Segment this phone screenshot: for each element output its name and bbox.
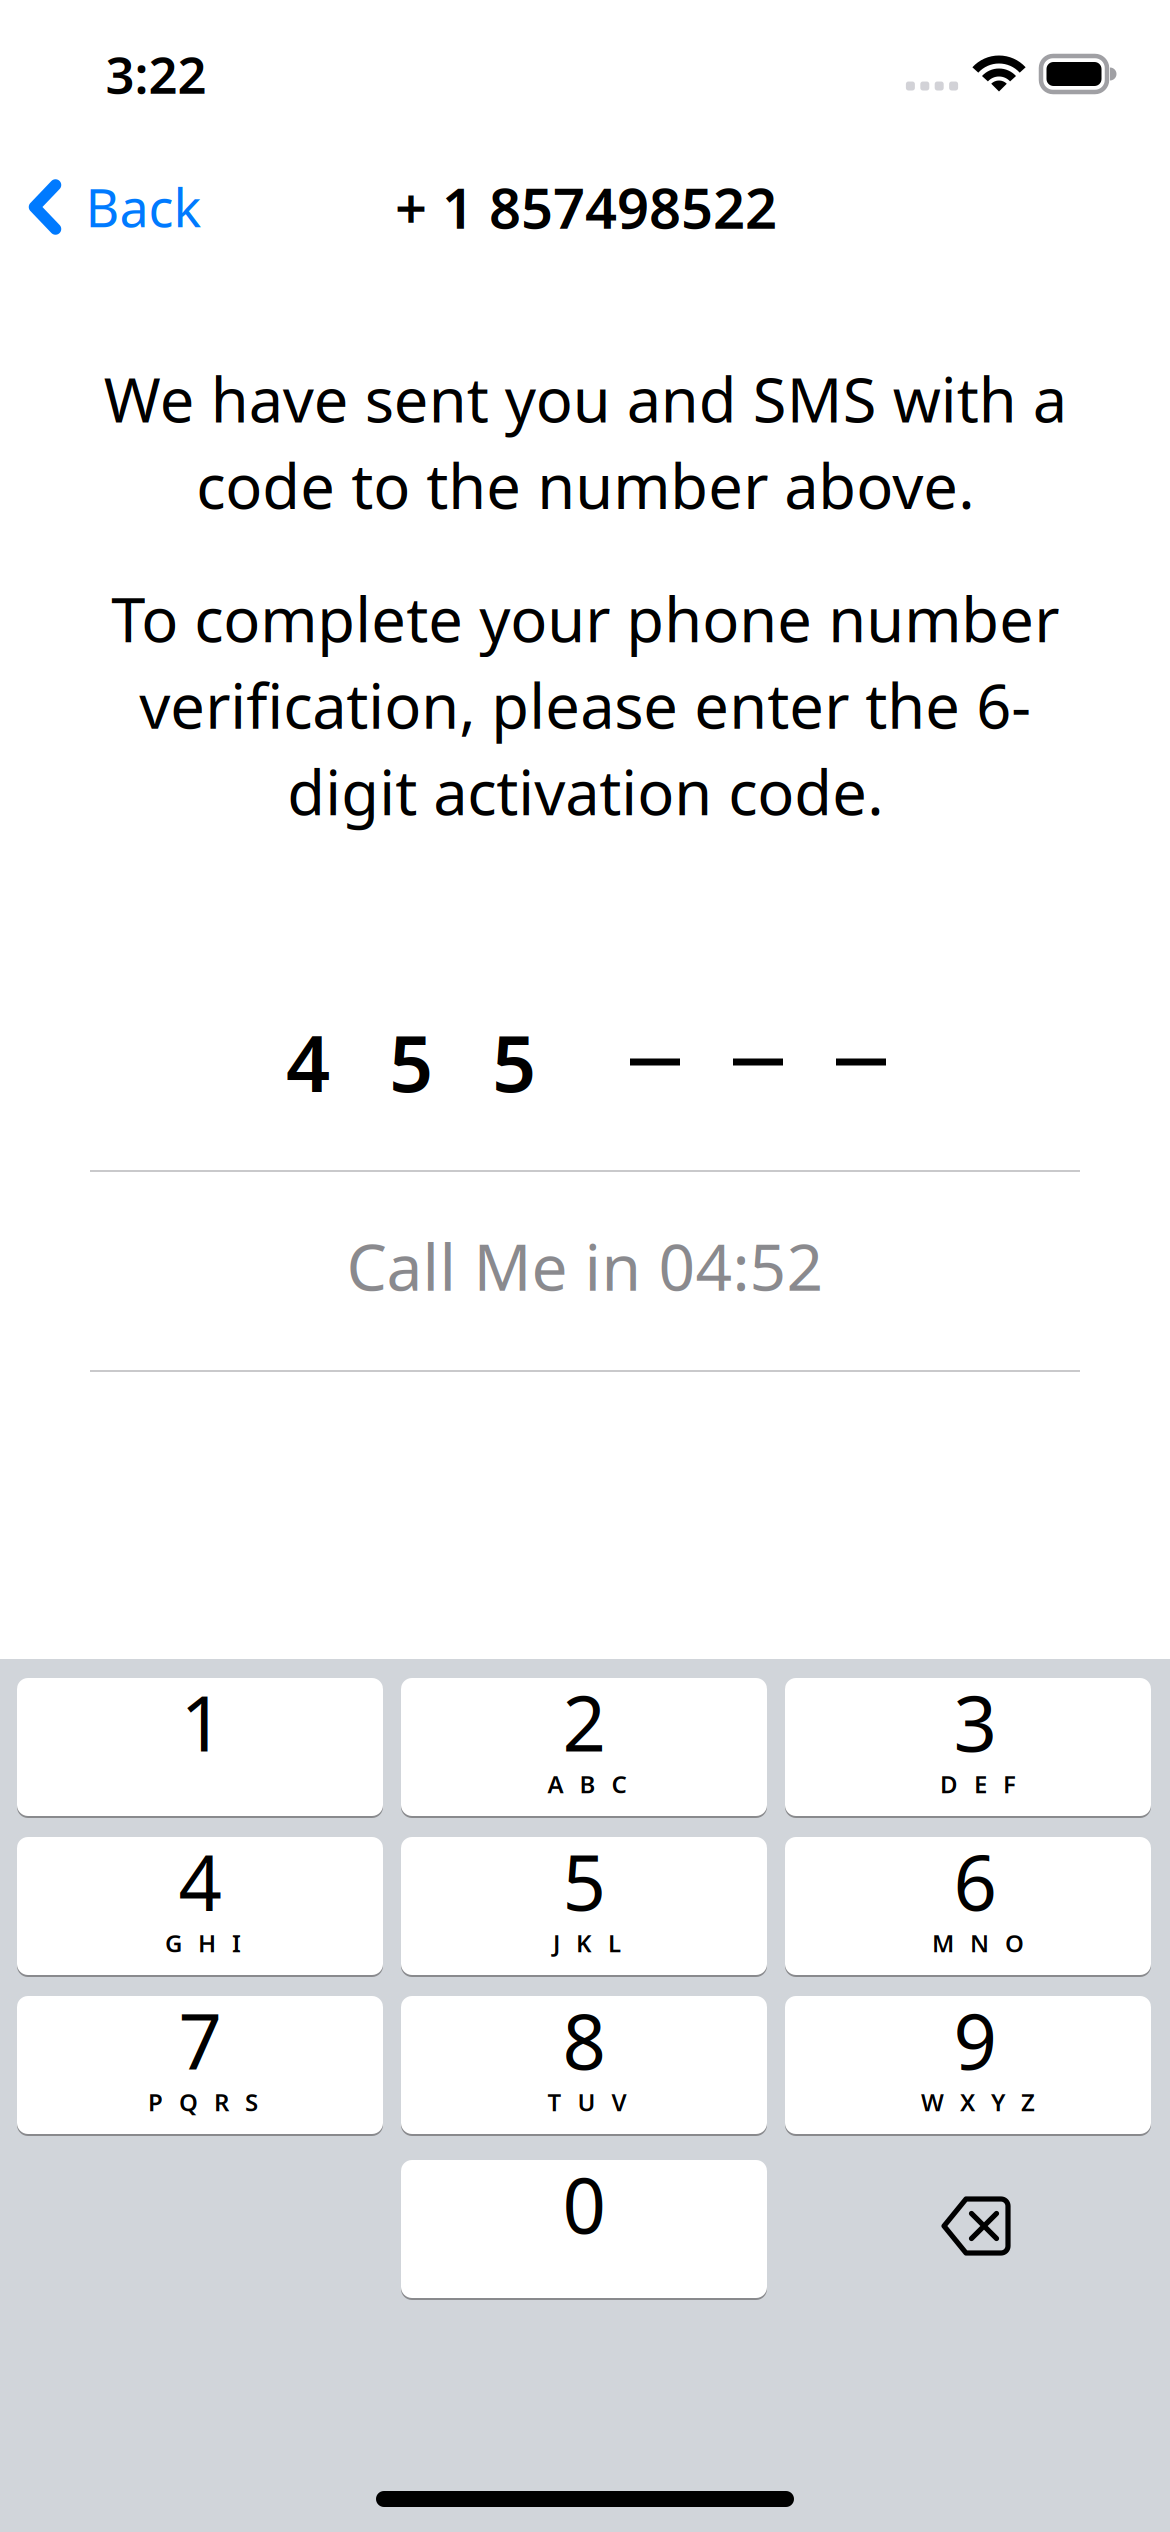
- staticText: Call Me in 04:52: [346, 1223, 823, 1308]
- staticText: 5: [562, 1830, 605, 1931]
- button[interactable]: 0: [401, 2159, 767, 2299]
- staticText: 0: [562, 2153, 605, 2254]
- staticText: MNO: [932, 1927, 1024, 1959]
- button[interactable]: Delete: [793, 2157, 1159, 2295]
- staticText: 8: [562, 1989, 605, 2090]
- staticText: To complete your phone number verificati…: [111, 578, 1059, 832]
- staticText: Back: [85, 172, 201, 242]
- staticText: PQRS: [148, 2086, 258, 2118]
- button[interactable]: Call Me in 04:52: [90, 1166, 1080, 1365]
- button[interactable]: 8: [401, 1995, 767, 2135]
- staticText: 4: [178, 1830, 221, 1931]
- staticText: TUV: [547, 2086, 626, 2118]
- staticText: 1: [180, 1671, 223, 1772]
- button[interactable]: 3: [785, 1677, 1151, 1817]
- button[interactable]: Back: [0, 150, 225, 264]
- staticText: ABC: [547, 1768, 626, 1800]
- staticText: + 1 857498522: [395, 170, 777, 244]
- staticText: JKL: [553, 1927, 621, 1959]
- staticText: 4: [286, 1011, 330, 1113]
- staticText: DEF: [940, 1768, 1016, 1800]
- staticText: 6: [953, 1830, 996, 1931]
- staticText: 9: [953, 1989, 996, 2090]
- button[interactable]: 6: [785, 1836, 1151, 1976]
- staticText: 3:22: [105, 40, 206, 108]
- button[interactable]: 5: [401, 1836, 767, 1976]
- staticText: GHI: [165, 1927, 241, 1959]
- staticText: WXYZ: [921, 2086, 1035, 2118]
- button[interactable]: 4: [17, 1836, 383, 1976]
- staticText: 5: [492, 1011, 536, 1113]
- button[interactable]: 2: [401, 1677, 767, 1817]
- staticText: 5: [389, 1011, 433, 1113]
- staticText: 2: [562, 1671, 605, 1772]
- button[interactable]: 7: [17, 1995, 383, 2135]
- staticText: 3: [953, 1671, 996, 1772]
- button[interactable]: 1: [17, 1677, 383, 1817]
- staticText: We have sent you and SMS with a code to …: [103, 358, 1066, 526]
- staticText: 7: [178, 1989, 221, 2090]
- button[interactable]: 9: [785, 1995, 1151, 2135]
